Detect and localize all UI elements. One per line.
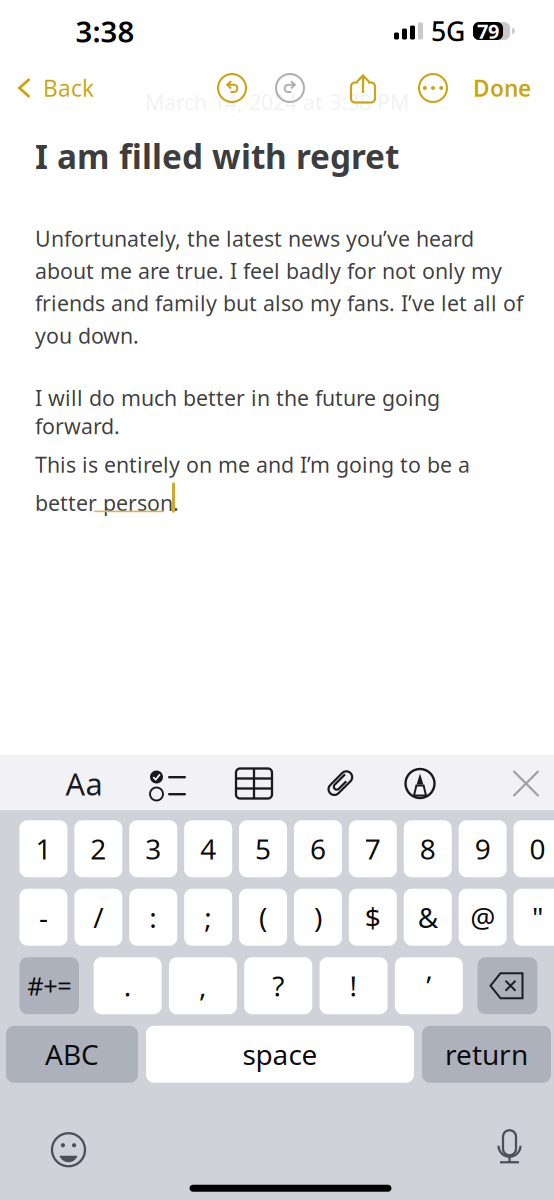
staticText: #+= <box>27 969 71 1002</box>
button[interactable]: Checklist <box>140 755 196 812</box>
button[interactable]: Aa <box>56 755 112 812</box>
button[interactable]: ! <box>319 957 387 1014</box>
button[interactable]: Back <box>0 62 124 114</box>
staticText: Done <box>473 73 531 103</box>
staticText: 0 <box>529 830 545 867</box>
staticText: space <box>242 1036 317 1073</box>
button[interactable]: More <box>411 62 455 114</box>
button[interactable]: , <box>169 957 237 1014</box>
button[interactable]: Dictate <box>481 1123 537 1177</box>
button[interactable]: ) <box>294 889 342 946</box>
staticText: . <box>124 967 132 1004</box>
button[interactable]: Table <box>226 755 282 812</box>
staticText: 5 <box>255 830 271 867</box>
staticText: , <box>199 967 207 1004</box>
button[interactable]: @ <box>459 889 507 946</box>
button[interactable]: 0 <box>513 820 554 877</box>
staticText: " <box>532 899 543 936</box>
button[interactable]: 1 <box>19 820 67 877</box>
staticText: better person. <box>35 489 179 517</box>
button[interactable]: 3 <box>129 820 177 877</box>
staticText: 3:38 <box>75 11 134 50</box>
staticText: ! <box>349 967 357 1004</box>
staticText: I will do much better in the future goin… <box>35 384 440 440</box>
button[interactable]: return <box>422 1026 551 1083</box>
staticText: 8 <box>420 830 436 867</box>
button[interactable]: ABC <box>6 1026 138 1083</box>
button[interactable]: : <box>129 889 177 946</box>
staticText: @ <box>470 899 495 936</box>
staticText: 7 <box>365 830 381 867</box>
staticText: 2 <box>90 830 106 867</box>
staticText: / <box>93 899 103 936</box>
button[interactable]: #+= <box>19 957 79 1014</box>
button[interactable]: . <box>94 957 162 1014</box>
button[interactable]: - <box>19 889 67 946</box>
button[interactable]: Delete <box>477 957 537 1014</box>
staticText: 6 <box>310 830 326 867</box>
staticText: - <box>39 899 48 936</box>
staticText: 5G <box>431 13 465 49</box>
button[interactable]: 7 <box>349 820 397 877</box>
button[interactable]: $ <box>349 889 397 946</box>
button[interactable]: 4 <box>184 820 232 877</box>
button[interactable]: ; <box>184 889 232 946</box>
button[interactable]: Close keyboard <box>498 755 554 812</box>
staticText: & <box>418 899 438 936</box>
button[interactable]: 9 <box>459 820 507 877</box>
button[interactable]: 8 <box>404 820 452 877</box>
button[interactable]: space <box>146 1026 414 1083</box>
staticText: March 14, 2024 at 3:38 PM <box>145 88 409 116</box>
staticText: ABC <box>45 1036 99 1073</box>
staticText: I am filled with regret <box>35 134 399 178</box>
staticText: 79 <box>477 18 499 44</box>
button[interactable]: / <box>74 889 122 946</box>
staticText: ? <box>272 967 284 1004</box>
staticText: ’ <box>426 967 431 1004</box>
button[interactable]: 5 <box>239 820 287 877</box>
staticText: Unfortunately, the latest news you’ve he… <box>35 224 523 350</box>
staticText: ; <box>204 899 212 936</box>
staticText: Aa <box>65 763 102 804</box>
button[interactable]: 2 <box>74 820 122 877</box>
staticText: 9 <box>475 830 491 867</box>
staticText: 1 <box>35 830 51 867</box>
button[interactable]: Attach <box>312 755 368 812</box>
button[interactable]: Done <box>463 62 541 114</box>
button[interactable]: ’ <box>395 957 463 1014</box>
button[interactable]: Emoji <box>40 1123 96 1177</box>
button[interactable]: Undo <box>210 62 254 114</box>
button[interactable]: Markup <box>392 755 448 812</box>
staticText: Back <box>43 73 94 103</box>
button[interactable]: ? <box>244 957 312 1014</box>
staticText: 3 <box>145 830 161 867</box>
button[interactable]: " <box>513 889 554 946</box>
staticText: 4 <box>200 830 216 867</box>
staticText: ( <box>259 899 267 936</box>
staticText: $ <box>365 899 381 936</box>
staticText: ) <box>314 899 322 936</box>
button[interactable]: 6 <box>294 820 342 877</box>
button[interactable]: Redo <box>268 62 312 114</box>
staticText: return <box>445 1036 528 1073</box>
button[interactable]: ( <box>239 889 287 946</box>
staticText: This is entirely on me and I’m going to … <box>35 450 470 478</box>
staticText: : <box>149 899 157 936</box>
button[interactable]: & <box>404 889 452 946</box>
button[interactable]: Share <box>341 62 385 114</box>
